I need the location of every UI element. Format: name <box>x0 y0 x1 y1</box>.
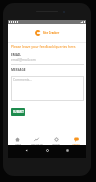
button[interactable]: Services <box>46 137 66 146</box>
button[interactable]: Who We Are <box>27 137 46 146</box>
staticText: Who We Are <box>31 143 43 146</box>
button[interactable]: Contact <box>66 137 86 146</box>
other: Back <box>25 149 28 152</box>
staticText: Comments... <box>13 78 32 82</box>
button[interactable]: Home <box>8 137 27 146</box>
staticText: email@mail.com <box>11 58 36 62</box>
other: Recents <box>66 149 69 152</box>
staticText: Site Cracker <box>43 31 60 35</box>
staticText: Services <box>52 143 60 146</box>
staticText: Contact <box>72 143 80 146</box>
other: Home <box>46 149 49 152</box>
button[interactable]: Comments... <box>11 76 84 101</box>
staticText: Home <box>15 143 21 146</box>
button[interactable]: SUBMIT <box>11 108 25 116</box>
staticText: Please leave your feedback/queries here. <box>11 44 77 49</box>
staticText: EMAIL <box>11 53 22 57</box>
staticText: MESSAGE <box>11 68 26 72</box>
staticText: SUBMIT <box>13 110 24 114</box>
